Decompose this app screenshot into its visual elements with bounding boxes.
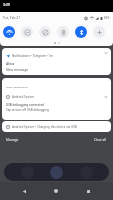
button[interactable]: Edit tiles [93, 26, 105, 38]
staticText: Manage [6, 138, 19, 142]
button[interactable]: Silent notifications [2, 78, 111, 120]
button[interactable]: Do Not Disturb [21, 26, 33, 38]
button[interactable]: Phone [21, 166, 34, 179]
staticText: Silent notifications [6, 85, 28, 88]
staticText: Tap to turn off USB debugging [6, 108, 49, 112]
staticText: USB debugging connected [6, 103, 44, 107]
button[interactable]: Battery Saver [57, 26, 69, 38]
staticText: Android System [12, 95, 35, 99]
staticText: Android System • Charging this device vi… [12, 125, 77, 129]
button[interactable]: Android System • Charging this device vi… [2, 121, 111, 132]
button[interactable]: Bluetooth [75, 26, 87, 38]
staticText: Alina [6, 61, 15, 66]
button[interactable]: Home [49, 184, 63, 198]
button[interactable]: Back [17, 184, 31, 198]
staticText: 83% [104, 16, 110, 20]
staticText: Notifications • Telegram • 1m [12, 54, 53, 58]
button[interactable]: Flashlight [39, 26, 51, 38]
staticText: Clear all [94, 138, 107, 142]
staticText: Tue, Feb 27 [3, 16, 20, 20]
button[interactable]: Recent apps [81, 184, 95, 198]
button[interactable]: Clear all [92, 136, 109, 144]
staticText: New message [6, 67, 29, 72]
button[interactable]: Messages [50, 166, 63, 179]
button[interactable]: Internet [3, 26, 15, 38]
button[interactable]: Manage [4, 136, 21, 144]
button[interactable]: Notifications • Telegram • 1m [2, 48, 111, 75]
staticText: 3:39 [3, 2, 10, 7]
